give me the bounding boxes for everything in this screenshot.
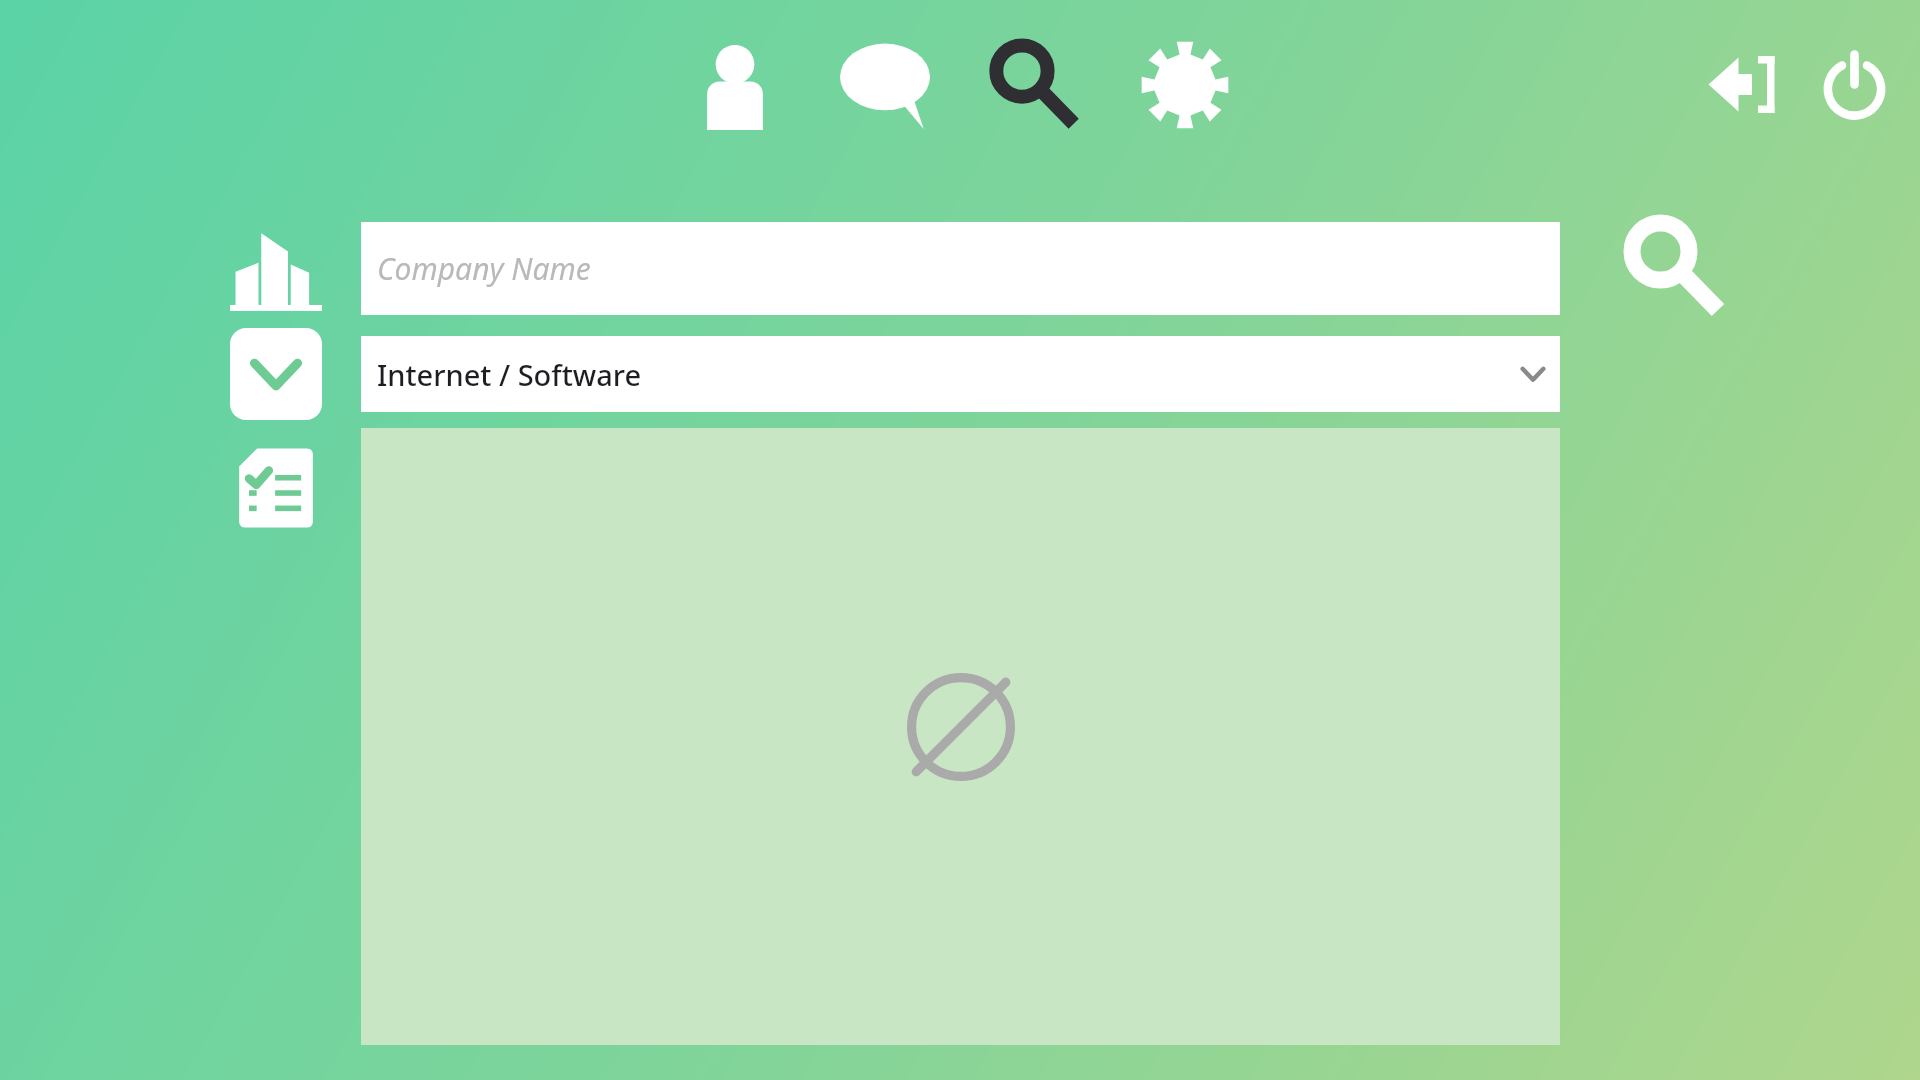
button[interactable]: Companies [228, 222, 324, 318]
button[interactable]: Expand [230, 328, 322, 420]
button[interactable]: Profile [680, 30, 790, 140]
button[interactable]: Company Name [361, 222, 1560, 315]
button[interactable]: Search [1620, 212, 1730, 322]
button[interactable]: Internet / Software [361, 336, 1560, 412]
button[interactable]: Settings [1130, 30, 1240, 140]
button[interactable]: Log out [1698, 38, 1790, 130]
staticText: Company Name [377, 248, 591, 289]
button[interactable]: Tasks [230, 442, 322, 534]
button[interactable]: Messages [830, 30, 940, 140]
button[interactable]: Search [980, 30, 1090, 140]
staticText: Internet / Software [377, 355, 642, 394]
button[interactable]: Power [1808, 38, 1900, 130]
